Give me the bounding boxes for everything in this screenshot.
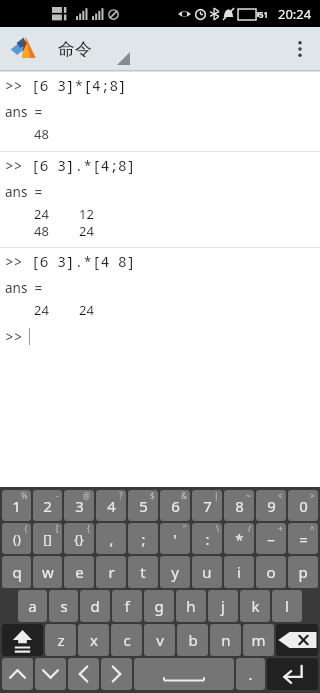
staticText: c [123,630,131,650]
staticText: [] [43,530,52,548]
staticText: s [60,596,68,616]
button[interactable]: . [236,658,265,690]
button[interactable]: c [111,624,142,656]
button[interactable]: 2 [33,490,62,521]
button[interactable]: * [224,523,254,554]
button[interactable]: i [224,556,254,588]
staticText: k [251,596,260,616]
staticText: | [214,490,219,501]
staticText: >> [6 3]*[4;8] [5,75,127,95]
staticText: " [183,523,187,534]
button[interactable]: f [112,590,142,622]
button[interactable]: 4 [96,490,126,521]
button[interactable]: Right [101,658,132,690]
button[interactable]: Enter [267,658,318,690]
button[interactable]: More options [280,29,320,69]
staticText: i [237,562,241,582]
button[interactable]: Down [35,658,66,690]
button[interactable]: x [78,624,109,656]
button[interactable]: e [64,556,94,588]
staticText: x [90,630,98,650]
button[interactable]: s [49,590,78,622]
button[interactable]: b [177,624,208,656]
staticText: r [108,562,115,582]
staticText: 2 [43,496,52,516]
button[interactable]: >> [6 3].*[4;8] [0,152,320,178]
button[interactable]: >> [6 3]*[4;8] [0,72,320,98]
staticText: 24 [79,222,94,239]
button[interactable]: Space [134,658,234,690]
button[interactable]: >> [6 3].*[4 8] [0,248,320,274]
button[interactable]: ' [160,523,190,554]
button[interactable]: = [288,523,318,554]
button[interactable]: >> [0,324,320,348]
button[interactable]: [] [33,523,62,554]
staticText: : [205,529,210,549]
button[interactable]: m [243,624,274,656]
button[interactable]: g [144,590,174,622]
button[interactable]: () [2,523,31,554]
staticText: v [156,630,164,650]
button[interactable]: Up [2,658,33,690]
staticText: 48 [34,222,49,239]
button[interactable]: r [96,556,126,588]
button[interactable]: n [210,624,241,656]
button[interactable]: a [18,590,47,622]
staticText: j [221,596,225,616]
button[interactable]: – [256,523,286,554]
button[interactable]: 1 [2,490,31,521]
button[interactable]: t [128,556,158,588]
staticText: w [42,562,54,582]
button[interactable]: u [192,556,222,588]
staticText: ^ [310,523,315,534]
staticText: { [87,523,91,534]
button[interactable]: v [144,624,175,656]
button[interactable]: y [160,556,190,588]
staticText: >> [5,326,23,346]
staticText: . [248,664,253,684]
button[interactable]: w [33,556,62,588]
button[interactable]: 3 [64,490,94,521]
button[interactable]: 9 [256,490,286,521]
staticText: f [124,596,130,616]
staticText: () [13,530,21,548]
staticText: 命令 [58,39,92,60]
staticText: y [171,562,179,582]
button[interactable]: o [256,556,286,588]
button[interactable]: l [272,590,302,622]
staticText: – [267,529,275,549]
button[interactable]: p [288,556,318,588]
staticText: < [278,490,283,501]
staticText: 12 [79,205,94,222]
staticText: = [299,529,308,549]
staticText: 6 [171,496,180,516]
staticText: b [188,630,198,650]
button[interactable]: 6 [160,490,190,521]
button[interactable]: {} [64,523,94,554]
button[interactable]: z [45,624,76,656]
button[interactable]: 5 [128,490,158,521]
staticText: 24 [34,205,49,222]
button[interactable]: 8 [224,490,254,521]
button[interactable]: Backspace [276,624,318,656]
staticText: ( [25,523,28,534]
staticText: , [109,529,114,549]
staticText: 20:24 [278,5,312,23]
button[interactable]: : [192,523,222,554]
button[interactable]: 7 [192,490,222,521]
button[interactable]: h [176,590,206,622]
button[interactable]: Shift [2,624,43,656]
button[interactable]: d [80,590,110,622]
button[interactable]: ; [128,523,158,554]
staticText: a [28,596,37,616]
staticText: n [221,630,231,650]
staticText: >> [6 3].*[4 8] [5,251,136,271]
button[interactable]: j [208,590,238,622]
button[interactable]: q [2,556,31,588]
button[interactable]: Left [68,658,99,690]
button[interactable]: 0 [288,490,318,521]
staticText: d [90,596,100,616]
button[interactable]: , [96,523,126,554]
button[interactable]: k [240,590,270,622]
staticText: 5 [139,496,148,516]
